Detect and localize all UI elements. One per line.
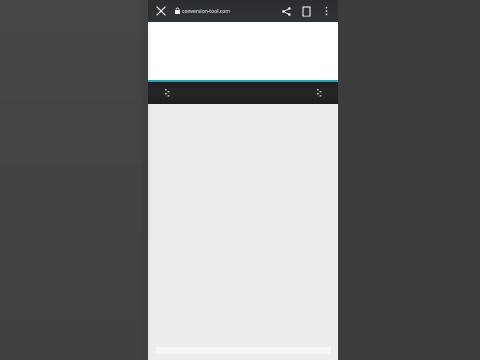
button[interactable]: Share bbox=[276, 1, 296, 21]
button[interactable]: conversion-tool.com bbox=[175, 0, 276, 22]
button[interactable]: Options bbox=[312, 86, 326, 100]
button[interactable]: Close bbox=[153, 3, 169, 19]
button[interactable]: Menu bbox=[160, 86, 174, 100]
staticText: conversion-tool.com bbox=[182, 8, 230, 15]
button[interactable]: Bookmark bbox=[296, 1, 316, 21]
button[interactable]: More options bbox=[316, 1, 336, 21]
